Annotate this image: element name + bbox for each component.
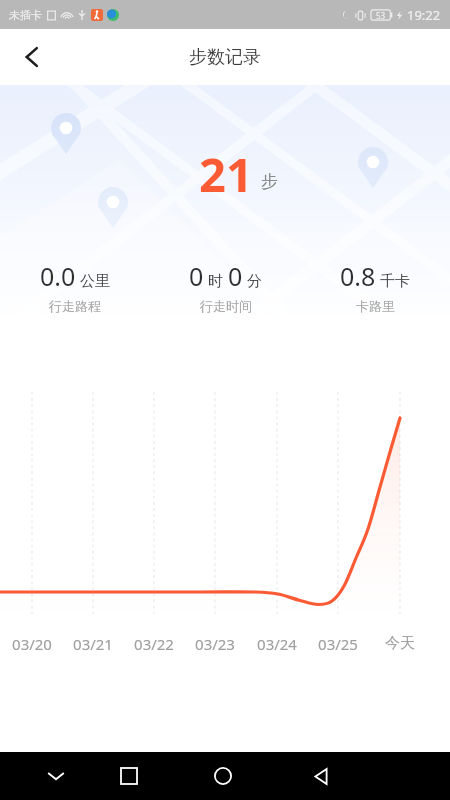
staticText: 分 bbox=[247, 272, 262, 291]
staticText: 千卡 bbox=[380, 272, 410, 291]
staticText: 03/25 bbox=[308, 634, 368, 654]
staticText: 53 bbox=[376, 10, 386, 21]
staticText: 03/21 bbox=[63, 634, 123, 654]
button[interactable]: Back bbox=[7, 32, 57, 82]
staticText: 行走时间 bbox=[200, 298, 252, 314]
staticText: 公里 bbox=[80, 272, 110, 291]
staticText: 0.8 bbox=[340, 259, 376, 293]
staticText: 今天 bbox=[370, 634, 430, 653]
staticText: 时 bbox=[208, 272, 223, 291]
staticText: 步数记录 bbox=[189, 46, 261, 69]
staticText: 0 bbox=[228, 259, 243, 293]
staticText: 未插卡 bbox=[9, 8, 42, 22]
button[interactable]: Recent apps bbox=[106, 753, 152, 799]
staticText: 步 bbox=[261, 171, 278, 192]
button[interactable]: Back bbox=[298, 753, 344, 799]
staticText: 21 bbox=[199, 142, 253, 206]
staticText: 03/22 bbox=[124, 634, 184, 654]
staticText: 行走路程 bbox=[49, 298, 101, 314]
staticText: 0.0 bbox=[40, 259, 76, 293]
staticText: 03/23 bbox=[185, 634, 245, 654]
staticText: 03/20 bbox=[2, 634, 62, 654]
staticText: 19:22 bbox=[407, 6, 441, 24]
staticText: 0 bbox=[189, 259, 204, 293]
button[interactable]: Home bbox=[200, 753, 246, 799]
staticText: 卡路里 bbox=[356, 298, 395, 314]
staticText: 03/24 bbox=[247, 634, 307, 654]
button[interactable]: Hide keyboard bbox=[33, 753, 79, 799]
